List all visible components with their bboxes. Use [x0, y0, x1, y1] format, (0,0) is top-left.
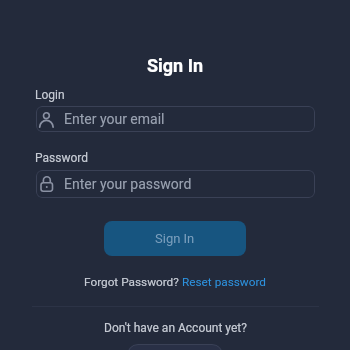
button[interactable]: Reset password — [182, 275, 267, 289]
button[interactable]: Sign In — [104, 221, 246, 256]
staticText: Sign In — [147, 55, 204, 76]
button[interactable]: Enter your email — [36, 106, 315, 132]
button[interactable] — [127, 344, 223, 350]
staticText: Password — [35, 151, 89, 165]
staticText: Enter your email — [64, 111, 165, 127]
staticText: Login — [35, 88, 65, 102]
staticText: Sign In — [155, 231, 195, 246]
staticText: Enter your password — [64, 176, 192, 192]
staticText: Forgot Password? — [84, 275, 182, 289]
staticText: Don't have an Account yet? — [104, 321, 247, 335]
button[interactable]: Enter your password — [36, 170, 315, 198]
